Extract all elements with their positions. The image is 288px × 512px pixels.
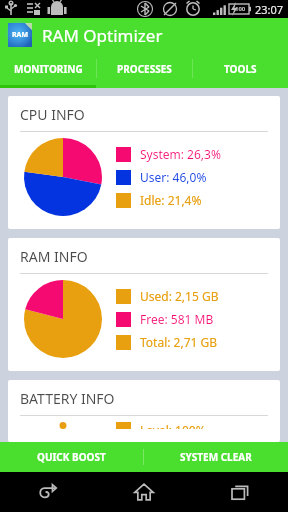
staticText: QUICK BOOST [37, 450, 106, 464]
staticText: Level: 100% [140, 422, 206, 429]
button[interactable]: CPU INFO [8, 96, 280, 229]
staticText: 23:07 [255, 2, 284, 17]
button[interactable]: Back [0, 472, 96, 512]
button[interactable]: Home [96, 472, 192, 512]
button[interactable]: MONITORING [0, 52, 96, 85]
button[interactable]: QUICK BOOST [0, 442, 143, 472]
staticText: Total: 2,71 GB [140, 334, 218, 350]
staticText: BATTERY INFO [20, 389, 115, 408]
staticText: CPU INFO [20, 105, 85, 124]
staticText: Free: 581 MB [140, 311, 214, 327]
button[interactable]: TOOLS [193, 52, 288, 85]
staticText: 100 [235, 5, 246, 13]
staticText: RAM Optimizer [42, 24, 163, 47]
button[interactable]: SYSTEM CLEAR [144, 442, 288, 472]
staticText: User: 46,0% [140, 169, 207, 185]
button[interactable]: BATTERY INFO [8, 380, 280, 442]
staticText: RAM INFO [20, 247, 88, 266]
button[interactable]: PROCESSES [97, 52, 192, 85]
staticText: Used: 2,15 GB [140, 288, 219, 304]
staticText: System: 26,3% [140, 146, 221, 162]
staticText: SYSTEM CLEAR [180, 450, 252, 464]
button[interactable]: RAM INFO [8, 238, 280, 371]
staticText: RAM [12, 30, 29, 40]
staticText: TOOLS [224, 62, 257, 76]
staticText: PROCESSES [117, 62, 172, 76]
staticText: MONITORING [14, 62, 83, 76]
button[interactable]: Recent apps [192, 472, 288, 512]
staticText: Idle: 21,4% [140, 192, 202, 208]
